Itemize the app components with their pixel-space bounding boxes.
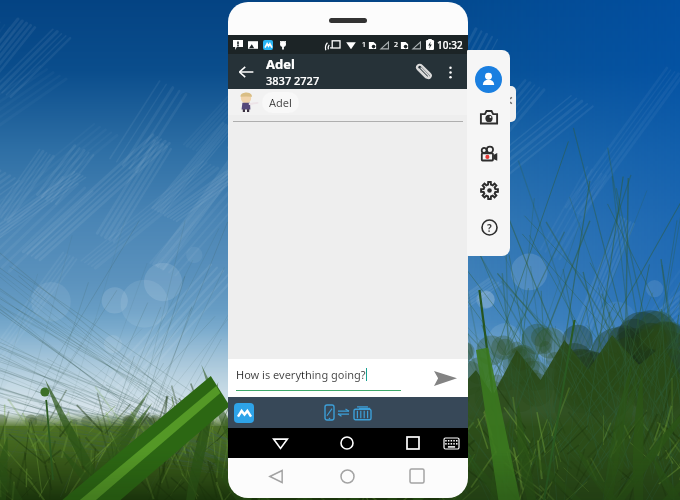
button[interactable]: Recents (400, 430, 426, 456)
button[interactable]: Home (334, 430, 360, 456)
button[interactable]: Screenshot (476, 104, 502, 130)
button[interactable]: Settings (476, 177, 502, 203)
staticText: Adel (266, 55, 295, 73)
staticText: 1 (362, 40, 367, 50)
staticText: 3837 2727 (266, 73, 320, 88)
button[interactable]: Recents (404, 463, 430, 489)
button[interactable]: Adel (238, 89, 468, 115)
staticText: 2 (394, 40, 399, 50)
button[interactable]: Keyboard app (234, 403, 254, 423)
button[interactable]: Home (334, 463, 360, 489)
button[interactable]: Back (267, 430, 293, 456)
button[interactable]: Help (476, 214, 502, 240)
button[interactable]: Collapse panel (498, 86, 516, 122)
button[interactable]: Attach file (412, 60, 436, 84)
staticText: 10:32 (437, 38, 463, 52)
staticText: ? (487, 221, 492, 235)
button[interactable]: Send (431, 364, 459, 392)
button[interactable]: Hide keyboard (440, 432, 462, 454)
staticText: How is everything going? (236, 367, 366, 382)
staticText: Adel (269, 95, 292, 110)
button[interactable]: Back (234, 60, 258, 84)
button[interactable]: Back (263, 463, 289, 489)
button[interactable]: More options (440, 62, 460, 82)
button[interactable]: Account (475, 66, 502, 93)
button[interactable]: Record video (476, 141, 502, 167)
